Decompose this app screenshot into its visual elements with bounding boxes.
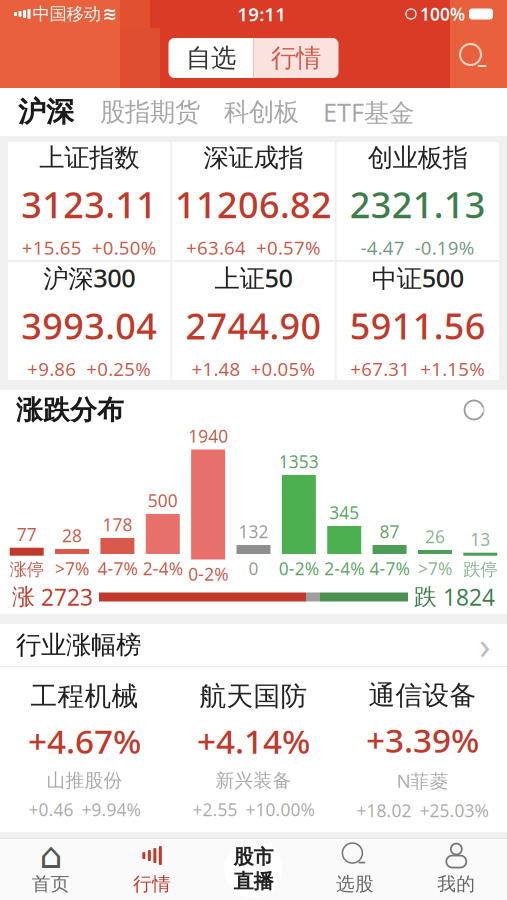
staticText: 1824	[443, 582, 495, 612]
button[interactable]: 股市	[203, 839, 304, 899]
staticText: +25.03%	[419, 799, 488, 822]
button[interactable]: 股指期货	[88, 89, 212, 135]
staticText: +63.64	[186, 235, 246, 260]
staticText: +0.57%	[256, 235, 321, 260]
button[interactable]: 刷新	[457, 393, 491, 427]
staticText: 2-4%	[324, 557, 364, 580]
button[interactable]: 科创板	[212, 89, 311, 135]
staticText: -4.47	[361, 235, 405, 260]
button[interactable]: 上证50	[172, 262, 335, 380]
button[interactable]: 中证500	[337, 262, 499, 380]
button[interactable]: 工程机械	[0, 680, 169, 821]
staticText: 4-7%	[97, 557, 137, 580]
button[interactable]: 通信设备	[338, 679, 507, 822]
staticText: >7%	[55, 557, 89, 580]
staticText: 涨跌分布	[16, 394, 124, 426]
staticText: 行业涨幅榜	[16, 629, 141, 660]
staticText: 0-2%	[188, 562, 228, 585]
button[interactable]: 航天国防	[169, 680, 338, 821]
button[interactable]: 自选	[168, 38, 253, 78]
staticText: ›	[479, 620, 491, 670]
staticText: 3993.04	[21, 301, 157, 349]
button[interactable]: 搜索	[451, 35, 497, 81]
staticText: 跌停	[463, 559, 497, 580]
staticText: 28	[62, 524, 82, 547]
staticText: 26	[425, 525, 445, 548]
staticText: 178	[102, 513, 132, 536]
staticText: 500	[148, 489, 178, 512]
staticText: 上证50	[214, 261, 292, 294]
staticText: +3.39%	[366, 718, 479, 762]
staticText: 中证500	[372, 261, 464, 294]
staticText: 0-2%	[279, 557, 319, 580]
staticText: 中国移动	[32, 3, 100, 25]
staticText: +15.65	[22, 235, 82, 260]
staticText: 行情	[133, 872, 171, 895]
staticText: 13	[470, 528, 490, 551]
staticText: 87	[380, 520, 400, 543]
button[interactable]: 上证指数	[8, 142, 170, 260]
button[interactable]: 创业板指	[337, 142, 499, 260]
staticText: 5911.56	[350, 301, 486, 349]
staticText: 跌	[414, 583, 437, 611]
staticText: 1353	[279, 450, 319, 473]
staticText: 涨停	[10, 559, 44, 580]
button[interactable]: ⌂	[0, 839, 101, 899]
staticText: 股市	[233, 844, 273, 869]
staticText: ⌂	[39, 835, 62, 876]
staticText: 选股	[336, 872, 374, 895]
button[interactable]: 行情	[101, 839, 203, 899]
staticText: 77	[17, 523, 37, 546]
staticText: 2723	[41, 582, 93, 612]
button[interactable]: ETF基金	[311, 89, 426, 135]
staticText: +9.94%	[81, 798, 140, 821]
staticText: +10.00%	[245, 798, 314, 821]
staticText: 1940	[188, 424, 228, 447]
button[interactable]: 行业涨幅榜	[0, 624, 507, 666]
staticText: 沪深	[18, 95, 74, 129]
staticText: +4.67%	[28, 719, 141, 763]
staticText: 2744.90	[185, 301, 321, 349]
button[interactable]: 选股	[304, 839, 406, 899]
staticText: +18.02	[356, 799, 411, 822]
staticText: 首页	[32, 872, 70, 895]
staticText: 19:11	[237, 2, 286, 26]
staticText: 工程机械	[30, 680, 138, 713]
staticText: 沪深300	[43, 261, 135, 294]
staticText: >7%	[418, 557, 452, 580]
staticText: 深证成指	[203, 142, 303, 173]
staticText: 股指期货	[100, 96, 200, 127]
staticText: 100%	[420, 2, 465, 25]
staticText: 科创板	[224, 96, 299, 127]
button[interactable]: 深证成指	[172, 142, 335, 260]
button[interactable]: 我的	[406, 839, 507, 899]
staticText: +4.14%	[197, 719, 310, 763]
staticText: 我的	[437, 872, 475, 895]
staticText: +67.31	[350, 356, 410, 381]
staticText: 航天国防	[199, 680, 307, 713]
staticText: 山推股份	[46, 769, 122, 792]
staticText: +1.15%	[420, 356, 485, 381]
button[interactable]: 行情	[253, 38, 338, 78]
button[interactable]: 沪深	[4, 89, 88, 135]
staticText: 132	[238, 520, 268, 543]
staticText: +0.46	[28, 798, 73, 821]
button[interactable]: 沪深300	[8, 262, 170, 380]
staticText: 通信设备	[368, 679, 476, 712]
staticText: 直播	[233, 869, 273, 894]
staticText: +1.48	[191, 356, 240, 381]
staticText: +2.55	[192, 798, 237, 821]
staticText: ≋	[102, 4, 117, 24]
staticText: 4-7%	[370, 557, 410, 580]
staticText: +0.50%	[92, 235, 157, 260]
staticText: N菲菱	[396, 768, 448, 793]
staticText: 0	[248, 557, 258, 580]
staticText: ETF基金	[323, 95, 414, 129]
staticText: 3123.11	[21, 180, 157, 228]
staticText: 上证指数	[39, 142, 139, 173]
staticText: 涨	[12, 583, 35, 611]
staticText: +0.05%	[250, 356, 315, 381]
staticText: 自选	[186, 42, 236, 73]
staticText: -0.19%	[415, 235, 475, 260]
staticText: 345	[329, 501, 359, 524]
